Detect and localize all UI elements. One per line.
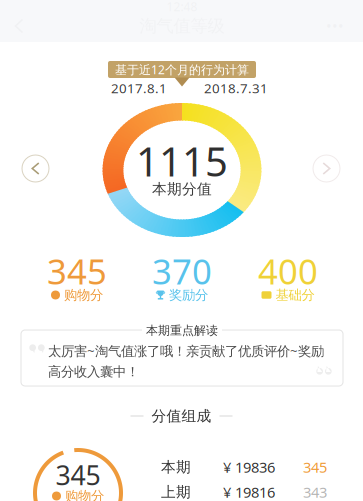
staticText: ¥ 19836 [223, 457, 275, 477]
staticText: 2018.7.31 [204, 79, 268, 97]
staticText: 购物分 [65, 488, 104, 501]
staticText: 基于近12个月的行为计算 [115, 61, 249, 77]
staticText: 高分收入囊中！ [48, 364, 139, 380]
staticText: 本期重点解读 [146, 323, 218, 338]
button[interactable]: Previous period [22, 155, 49, 182]
staticText: 分值组成 [151, 407, 211, 425]
staticText: 上期 [161, 483, 191, 501]
staticText: 太厉害~淘气值涨了哦！亲贡献了优质评价~奖励 [48, 342, 324, 360]
staticText: 基础分 [275, 287, 314, 303]
staticText: ¥ 19816 [223, 482, 275, 501]
staticText: 奖励分 [169, 287, 208, 303]
staticText: 345 [55, 457, 100, 493]
staticText: 400 [258, 248, 318, 294]
staticText: 本期分值 [152, 180, 212, 198]
staticText: 345 [47, 248, 107, 294]
staticText: 本期 [161, 458, 191, 476]
staticText: 1115 [136, 134, 228, 187]
staticText: 购物分 [64, 287, 103, 303]
staticText: 343 [303, 482, 327, 501]
staticText: 345 [303, 457, 327, 477]
staticText: 370 [152, 248, 212, 294]
button[interactable]: Next period [313, 155, 340, 182]
staticText: 2017.8.1 [111, 79, 167, 97]
